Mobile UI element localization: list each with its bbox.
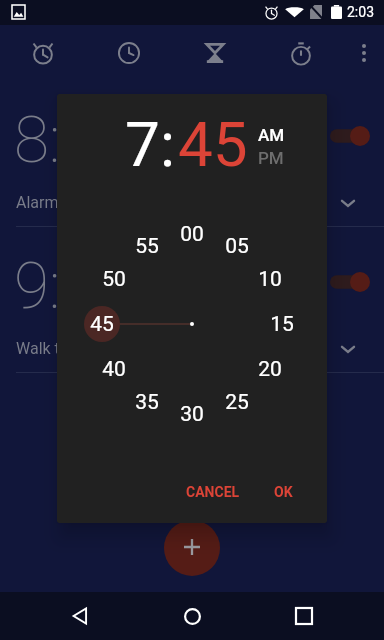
button[interactable]: 45 <box>82 310 122 338</box>
staticText: 10 <box>258 267 282 292</box>
button[interactable]: 40 <box>94 355 134 383</box>
button[interactable]: 45 <box>178 108 248 181</box>
button[interactable]: 35 <box>127 388 167 416</box>
button[interactable]: Add alarm <box>164 520 220 576</box>
staticText: 2:03 <box>347 4 374 20</box>
button[interactable]: Home <box>176 600 208 632</box>
staticText: 15 <box>270 312 294 337</box>
button[interactable]: 15 <box>262 310 302 338</box>
button[interactable]: Alarm <box>0 25 86 81</box>
button[interactable]: Toggle alarm <box>330 272 370 292</box>
staticText: 20 <box>258 357 282 382</box>
button[interactable]: Timer <box>172 25 258 81</box>
button[interactable]: Stopwatch <box>258 25 344 81</box>
button[interactable]: Back <box>64 592 96 640</box>
button[interactable]: More options <box>344 25 384 81</box>
button[interactable]: 10 <box>250 265 290 293</box>
staticText: 05 <box>225 234 249 259</box>
staticText: AM <box>258 125 285 145</box>
staticText: 50 <box>102 267 126 292</box>
staticText: 30 <box>180 402 204 427</box>
staticText: Alarm <box>16 193 59 212</box>
button[interactable]: Expand <box>336 191 360 215</box>
button[interactable]: PM <box>258 148 284 168</box>
button[interactable]: 8:00 <box>0 81 384 227</box>
button[interactable]: Recent apps <box>288 600 320 632</box>
button[interactable]: 05 <box>217 232 257 260</box>
button[interactable]: OK <box>266 476 301 508</box>
staticText: 40 <box>102 357 126 382</box>
staticText: 8:00 <box>14 103 131 178</box>
staticText: PM <box>258 148 284 168</box>
button[interactable]: 7 <box>125 108 160 181</box>
button[interactable]: 9:00 <box>0 227 384 373</box>
staticText: CANCEL <box>186 484 240 500</box>
staticText: 00 <box>180 222 204 247</box>
button[interactable]: 50 <box>94 265 134 293</box>
button[interactable]: 00 <box>172 220 212 248</box>
button[interactable]: Clock <box>86 25 172 81</box>
button[interactable]: 20 <box>250 355 290 383</box>
button[interactable]: 25 <box>217 388 257 416</box>
staticText: 35 <box>135 390 159 415</box>
staticText: Walk the dog <box>16 339 109 358</box>
staticText: : <box>160 108 176 181</box>
staticText: 9:00 <box>14 249 131 324</box>
staticText: 45 <box>90 312 114 337</box>
button[interactable]: Expand <box>336 337 360 361</box>
button[interactable]: 30 <box>172 400 212 428</box>
button[interactable]: Toggle alarm <box>330 126 370 146</box>
button[interactable]: AM <box>258 125 285 145</box>
staticText: OK <box>274 484 293 500</box>
button[interactable]: 55 <box>127 232 167 260</box>
staticText: 55 <box>135 234 159 259</box>
button[interactable]: CANCEL <box>178 476 248 508</box>
staticText: 25 <box>225 390 249 415</box>
